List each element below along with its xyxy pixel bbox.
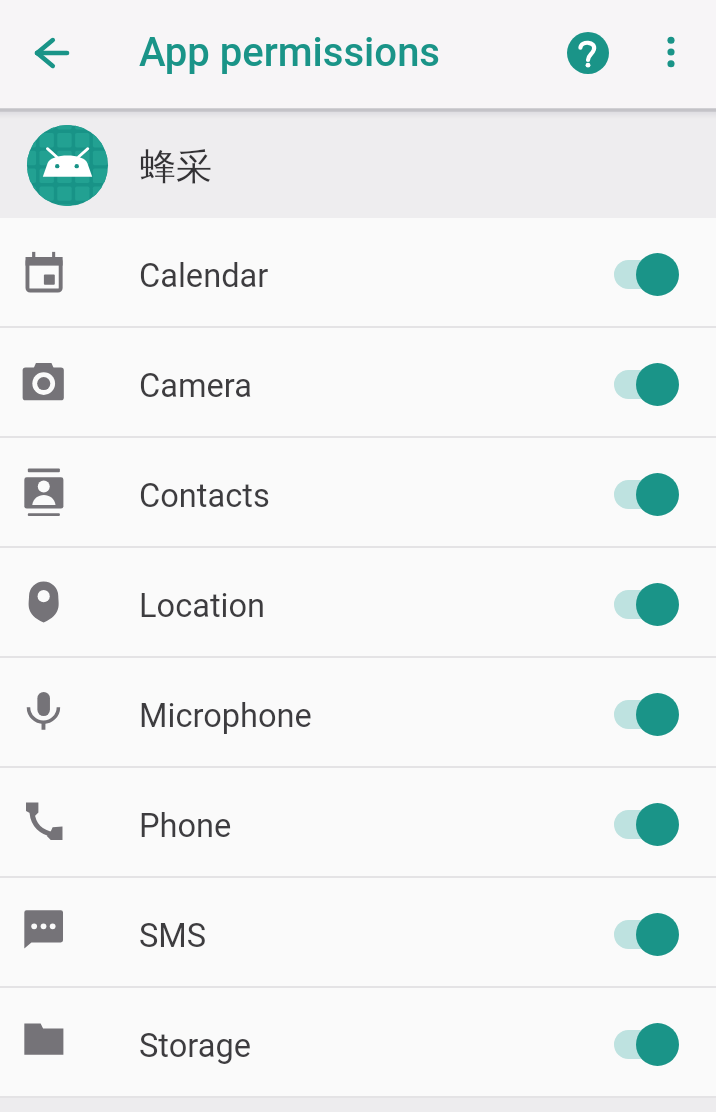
button[interactable]: Storage bbox=[0, 988, 716, 1098]
staticText: App permissions bbox=[139, 29, 441, 76]
staticText: SMS bbox=[139, 917, 207, 955]
button[interactable]: Toggle permission bbox=[601, 896, 704, 968]
button[interactable]: Phone bbox=[0, 768, 716, 878]
staticText: Phone bbox=[139, 807, 232, 845]
button[interactable]: Toggle permission bbox=[601, 236, 704, 308]
button[interactable]: Navigate up bbox=[4, 5, 100, 101]
button[interactable]: Toggle permission bbox=[601, 456, 704, 528]
staticText: Contacts bbox=[139, 477, 270, 515]
button[interactable]: Location bbox=[0, 548, 716, 658]
button[interactable]: Help bbox=[543, 8, 633, 98]
button[interactable]: Contacts bbox=[0, 438, 716, 548]
staticText: Storage bbox=[139, 1027, 252, 1065]
staticText: Calendar bbox=[139, 257, 269, 295]
button[interactable]: Toggle permission bbox=[601, 676, 704, 748]
button[interactable]: Toggle permission bbox=[601, 1006, 704, 1078]
button[interactable]: Toggle permission bbox=[601, 566, 704, 638]
button[interactable]: More options bbox=[626, 7, 716, 97]
staticText: 蜂采 bbox=[140, 144, 212, 189]
button[interactable]: Microphone bbox=[0, 658, 716, 768]
staticText: Location bbox=[139, 587, 266, 625]
button[interactable]: 蜂采 bbox=[0, 112, 716, 218]
staticText: Camera bbox=[139, 367, 252, 405]
button[interactable]: SMS bbox=[0, 878, 716, 988]
button[interactable]: Camera bbox=[0, 328, 716, 438]
button[interactable]: Toggle permission bbox=[601, 786, 704, 858]
staticText: Microphone bbox=[139, 697, 312, 735]
button[interactable]: Calendar bbox=[0, 218, 716, 328]
button[interactable]: Toggle permission bbox=[601, 346, 704, 418]
